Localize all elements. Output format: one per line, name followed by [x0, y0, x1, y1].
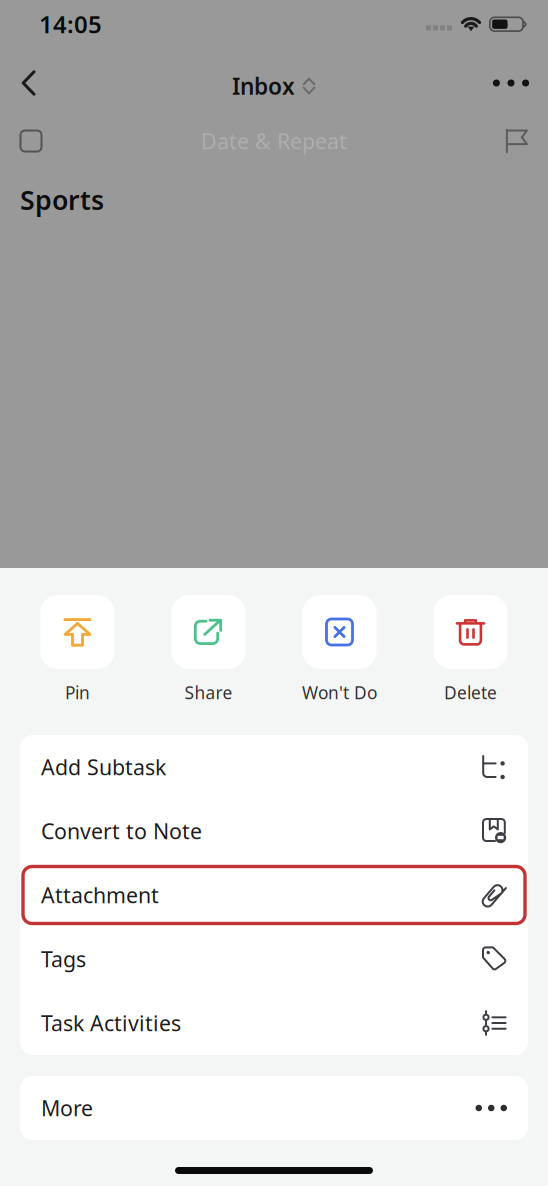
staticText: Attachment: [41, 881, 159, 909]
button[interactable]: Back: [7, 58, 51, 108]
staticText: Inbox: [232, 71, 295, 101]
button[interactable]: Inbox: [224, 64, 324, 108]
button[interactable]: More: [20, 1076, 528, 1140]
staticText: Share: [184, 681, 232, 704]
button[interactable]: Attachment: [20, 863, 528, 927]
button[interactable]: Delete: [411, 595, 529, 704]
staticText: Won't Do: [302, 681, 377, 704]
staticText: Sports: [20, 182, 104, 217]
staticText: Add Subtask: [41, 753, 166, 781]
button[interactable]: Tags: [20, 927, 528, 991]
staticText: Delete: [444, 681, 497, 704]
button[interactable]: Won't Do: [280, 595, 398, 704]
button[interactable]: Share: [149, 595, 267, 704]
button[interactable]: Task Activities: [20, 991, 528, 1055]
staticText: Pin: [65, 681, 90, 704]
staticText: 14:05: [39, 8, 102, 40]
staticText: Convert to Note: [41, 817, 202, 845]
staticText: More: [41, 1094, 93, 1122]
button[interactable]: Flag: [495, 119, 539, 163]
staticText: Task Activities: [41, 1009, 181, 1037]
staticText: Date & Repeat: [201, 127, 347, 155]
button[interactable]: Complete task: [9, 119, 53, 163]
button[interactable]: Add Subtask: [20, 735, 528, 799]
button[interactable]: More options: [486, 58, 536, 108]
button[interactable]: Pin: [18, 595, 136, 704]
button[interactable]: Convert to Note: [20, 799, 528, 863]
staticText: Tags: [41, 945, 86, 973]
